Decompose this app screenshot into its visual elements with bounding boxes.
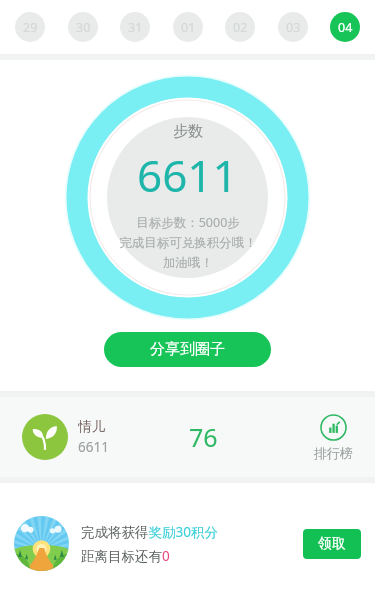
button[interactable]: 排行榜 — [314, 414, 353, 461]
staticText: 目标步数：5000步 — [136, 214, 240, 231]
staticText: 03 — [286, 19, 301, 36]
staticText: 距离目标还有0 — [81, 547, 170, 565]
staticText: 6611 — [78, 438, 109, 456]
staticText: 完成将获得奖励30积分 — [81, 523, 218, 541]
staticText: 情儿 — [78, 418, 105, 435]
button[interactable]: 分享到圈子 — [104, 332, 271, 367]
staticText: 01 — [181, 19, 196, 36]
staticText: 排行榜 — [314, 445, 353, 461]
staticText: 分享到圈子 — [150, 340, 225, 359]
staticText: 6611 — [137, 145, 238, 205]
staticText: 31 — [128, 19, 143, 36]
button[interactable]: 情儿 — [22, 414, 109, 460]
button[interactable]: 30 — [68, 12, 98, 42]
button[interactable]: 01 — [173, 12, 203, 42]
staticText: 04 — [338, 19, 353, 36]
staticText: 步数 — [173, 122, 203, 141]
staticText: 76 — [189, 420, 218, 454]
staticText: 30 — [76, 19, 91, 36]
button[interactable]: 领取 — [303, 529, 361, 559]
button[interactable]: 03 — [278, 12, 308, 42]
staticText: 领取 — [318, 535, 346, 553]
button[interactable]: 02 — [225, 12, 255, 42]
staticText: 加油哦！ — [163, 255, 213, 271]
staticText: 29 — [23, 19, 38, 36]
button[interactable]: 04 — [330, 12, 360, 42]
staticText: 02 — [233, 19, 248, 36]
staticText: 完成目标可兑换积分哦！ — [119, 235, 257, 251]
button[interactable]: 29 — [15, 12, 45, 42]
button[interactable]: 31 — [120, 12, 150, 42]
